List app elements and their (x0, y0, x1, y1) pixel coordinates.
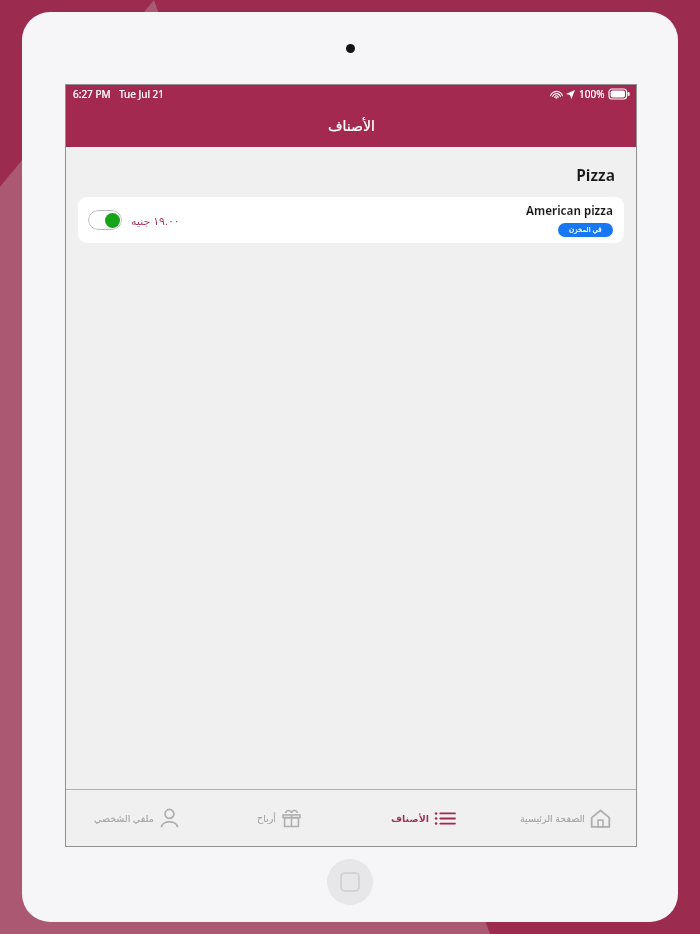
button[interactable]: American pizza (78, 197, 624, 243)
button[interactable]: Home (327, 859, 373, 905)
staticText: الصفحة الرئيسية (520, 812, 585, 825)
staticText: ملفي الشخصي (94, 812, 154, 825)
staticText: American pizza (526, 203, 613, 219)
staticText: Pizza (65, 164, 615, 185)
button[interactable]: ملفي الشخصي (65, 790, 208, 847)
button[interactable]: في المخزن (569, 225, 602, 235)
staticText: ١٩.٠٠ جنيه (131, 213, 180, 228)
button[interactable]: الأصناف (351, 790, 494, 847)
staticText: 6:27 PM (73, 87, 111, 101)
staticText: Tue Jul 21 (119, 87, 165, 101)
button[interactable]: الصفحة الرئيسية (494, 790, 637, 847)
staticText: الأصناف (328, 118, 375, 134)
staticText: أرباح (257, 813, 276, 824)
staticText: 100% (579, 87, 605, 101)
button[interactable]: Toggle availability (88, 210, 122, 230)
staticText: الأصناف (391, 813, 429, 824)
button[interactable]: أرباح (208, 790, 351, 847)
staticText: في المخزن (569, 225, 602, 235)
